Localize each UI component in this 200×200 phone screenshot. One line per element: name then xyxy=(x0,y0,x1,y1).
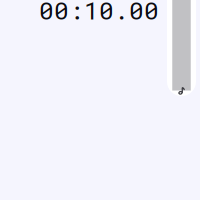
staticText: 00:10.00 xyxy=(39,0,159,26)
button[interactable]: Volume xyxy=(167,0,196,96)
